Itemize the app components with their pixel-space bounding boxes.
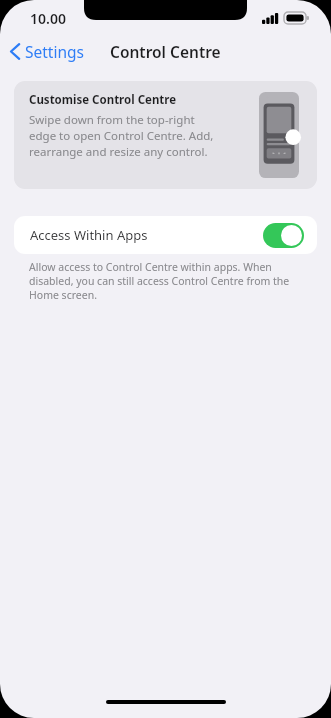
- button[interactable]: Access Within Apps toggle, on: [263, 223, 304, 248]
- staticText: Access Within Apps: [30, 226, 263, 244]
- staticText: Customise Control Centre: [29, 92, 177, 108]
- staticText: Control Centre: [110, 41, 221, 62]
- staticText: Swipe down from the top-right edge to op…: [29, 112, 221, 160]
- staticText: 10.00: [30, 9, 66, 28]
- button[interactable]: Customise Control Centre: [14, 81, 317, 189]
- staticText: Settings: [25, 41, 84, 62]
- staticText: Allow access to Control Centre within ap…: [29, 260, 309, 302]
- button[interactable]: Settings: [0, 37, 92, 66]
- button[interactable]: Access Within Apps: [14, 216, 317, 254]
